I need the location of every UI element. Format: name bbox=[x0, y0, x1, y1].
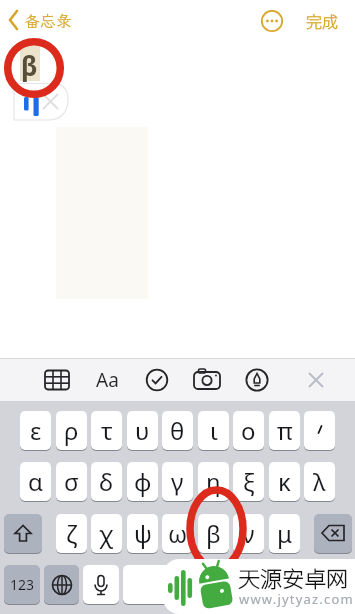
button[interactable]: ν bbox=[233, 514, 264, 553]
button[interactable]: ε bbox=[20, 411, 51, 450]
button[interactable]: τ bbox=[91, 411, 122, 450]
button[interactable]: ζ bbox=[56, 514, 87, 553]
staticText: ν bbox=[242, 517, 255, 550]
button[interactable] bbox=[279, 565, 352, 604]
staticText: σ bbox=[64, 465, 79, 498]
button[interactable]: θ bbox=[162, 411, 193, 450]
button[interactable]: α bbox=[20, 462, 51, 501]
button[interactable]: 123 bbox=[4, 565, 40, 604]
staticText: ρ bbox=[64, 414, 79, 447]
button[interactable] bbox=[258, 7, 286, 35]
button[interactable]: Aa bbox=[85, 360, 129, 400]
staticText: ω bbox=[168, 517, 188, 550]
button[interactable]: λ bbox=[304, 462, 335, 501]
button[interactable]: ι bbox=[198, 411, 229, 450]
button[interactable]: φ bbox=[127, 462, 158, 501]
staticText: 天源安卓网 bbox=[238, 561, 349, 593]
staticText: ε bbox=[30, 414, 42, 447]
button[interactable] bbox=[4, 514, 42, 553]
staticText: η bbox=[206, 465, 221, 498]
staticText: θ bbox=[170, 414, 185, 447]
staticText: ξ bbox=[243, 465, 255, 498]
staticText: γ bbox=[171, 465, 184, 498]
staticText: www.jytyaz.com bbox=[239, 590, 354, 608]
staticText: β bbox=[21, 48, 38, 83]
button[interactable] bbox=[123, 565, 274, 604]
staticText: α bbox=[28, 465, 43, 498]
button[interactable]: μ bbox=[269, 514, 300, 553]
button[interactable]: υ bbox=[127, 411, 158, 450]
staticText: χ bbox=[99, 517, 114, 550]
button[interactable]: χ bbox=[91, 514, 122, 553]
button[interactable]: ξ bbox=[233, 462, 264, 501]
staticText: λ bbox=[313, 465, 326, 498]
button[interactable]: β bbox=[198, 514, 229, 553]
button[interactable] bbox=[135, 360, 179, 400]
staticText: 完成 bbox=[306, 9, 339, 32]
button[interactable]: δ bbox=[91, 462, 122, 501]
button[interactable] bbox=[83, 565, 119, 604]
button[interactable] bbox=[35, 360, 79, 400]
button[interactable] bbox=[235, 360, 279, 400]
staticText: δ bbox=[99, 465, 114, 498]
staticText: β bbox=[206, 517, 221, 550]
staticText: κ bbox=[278, 465, 291, 498]
staticText: Aa bbox=[96, 367, 119, 393]
button[interactable] bbox=[314, 514, 352, 553]
staticText: ο bbox=[241, 414, 256, 447]
staticText: 备忘录 bbox=[24, 10, 73, 31]
button[interactable]: 备忘录 bbox=[4, 4, 94, 36]
button[interactable]: η bbox=[198, 462, 229, 501]
staticText: ζ bbox=[66, 517, 78, 550]
staticText: ι bbox=[210, 414, 218, 447]
staticText: μ bbox=[277, 517, 293, 550]
staticText: π bbox=[277, 414, 293, 447]
button[interactable]: ρ bbox=[56, 411, 87, 450]
button[interactable]: 完成 bbox=[296, 5, 348, 35]
button[interactable]: 天源安卓网 bbox=[163, 559, 355, 614]
button[interactable]: ο bbox=[233, 411, 264, 450]
staticText: φ bbox=[134, 465, 152, 498]
button[interactable]: ω bbox=[162, 514, 193, 553]
button[interactable]: ψ bbox=[127, 514, 158, 553]
button[interactable]: γ bbox=[162, 462, 193, 501]
button[interactable]: κ bbox=[269, 462, 300, 501]
button[interactable]: π bbox=[269, 411, 300, 450]
button[interactable] bbox=[295, 360, 337, 400]
button[interactable] bbox=[44, 565, 79, 604]
button[interactable]: σ bbox=[56, 462, 87, 501]
button[interactable] bbox=[304, 411, 335, 450]
button[interactable] bbox=[185, 360, 229, 400]
staticText: 123 bbox=[10, 575, 35, 594]
staticText: ψ bbox=[134, 517, 152, 550]
staticText: υ bbox=[135, 414, 150, 447]
staticText: τ bbox=[101, 414, 113, 447]
